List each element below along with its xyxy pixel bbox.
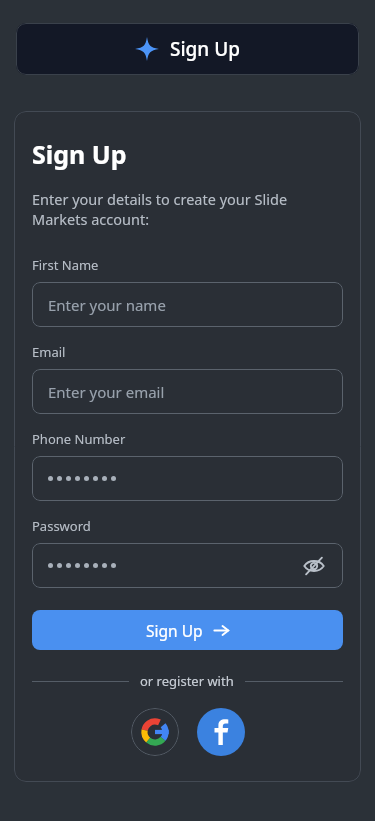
- button[interactable]: Sign Up: [32, 610, 343, 650]
- staticText: or register with: [140, 672, 234, 690]
- button[interactable]: Enter your email: [32, 369, 343, 414]
- button[interactable]: Enter your name: [32, 282, 343, 327]
- staticText: Sign Up: [146, 620, 203, 641]
- staticText: Sign Up: [32, 137, 127, 171]
- staticText: Password: [32, 517, 91, 535]
- button[interactable]: [32, 456, 343, 501]
- staticText: First Name: [32, 256, 99, 274]
- staticText: Email: [32, 343, 66, 361]
- button[interactable]: Show password: [32, 543, 343, 588]
- staticText: Enter your name: [48, 295, 166, 315]
- button[interactable]: Sign up with Facebook: [197, 708, 245, 756]
- staticText: Sign Up: [170, 36, 241, 62]
- button[interactable]: Sign Up: [16, 23, 359, 75]
- button[interactable]: Sign up with Google: [131, 708, 179, 756]
- staticText: Phone Number: [32, 430, 126, 448]
- button[interactable]: Show password: [301, 553, 327, 579]
- staticText: Enter your email: [48, 382, 165, 402]
- staticText: Enter your details to create your Slide …: [32, 189, 288, 230]
